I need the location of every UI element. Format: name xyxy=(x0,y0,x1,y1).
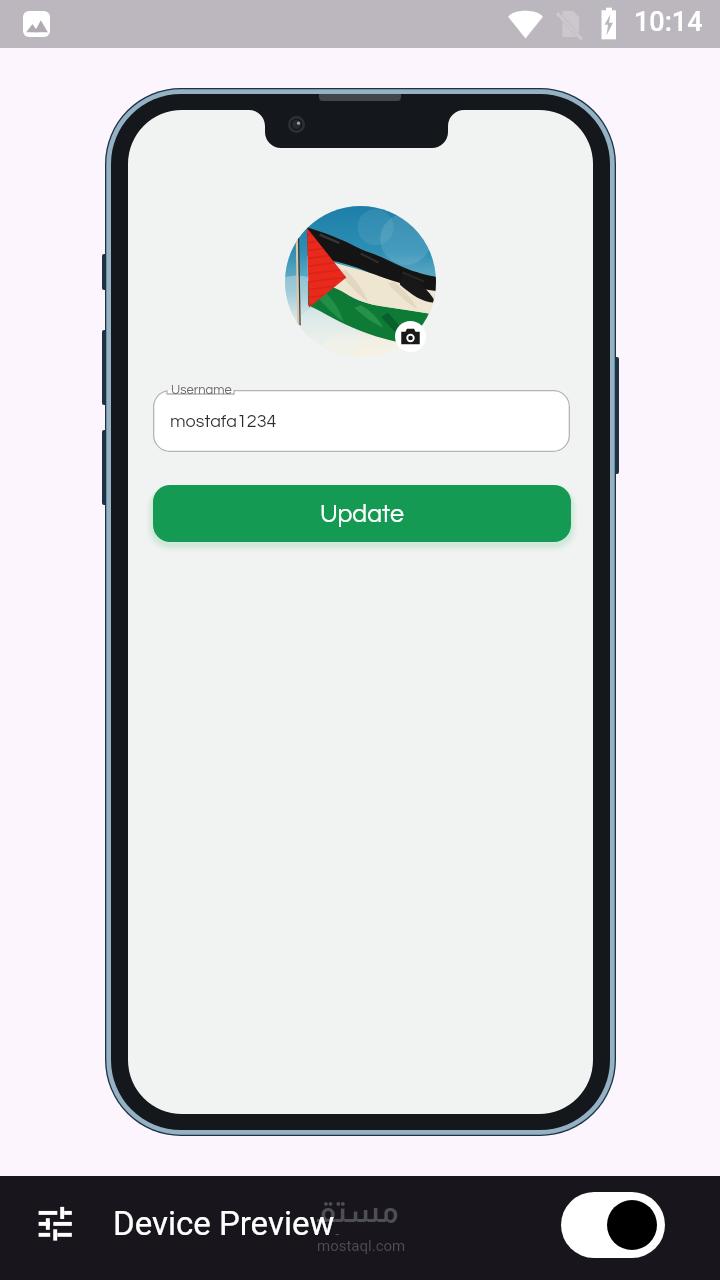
staticText: 10:14 xyxy=(634,6,703,38)
staticText: Device Preview xyxy=(113,1204,335,1243)
staticText: Update xyxy=(320,501,404,527)
staticText: mostaql.com xyxy=(317,1237,406,1255)
staticText: Username xyxy=(171,383,232,396)
other: Screenshot xyxy=(23,11,50,37)
button[interactable]: Change profile photo xyxy=(395,321,426,352)
button[interactable]: Toggle device preview xyxy=(561,1192,665,1258)
staticText: مستقل xyxy=(317,1195,405,1235)
staticText: mostafa1234 xyxy=(170,412,277,431)
button[interactable]: Update xyxy=(153,485,571,542)
button[interactable]: Display settings xyxy=(37,1205,75,1243)
